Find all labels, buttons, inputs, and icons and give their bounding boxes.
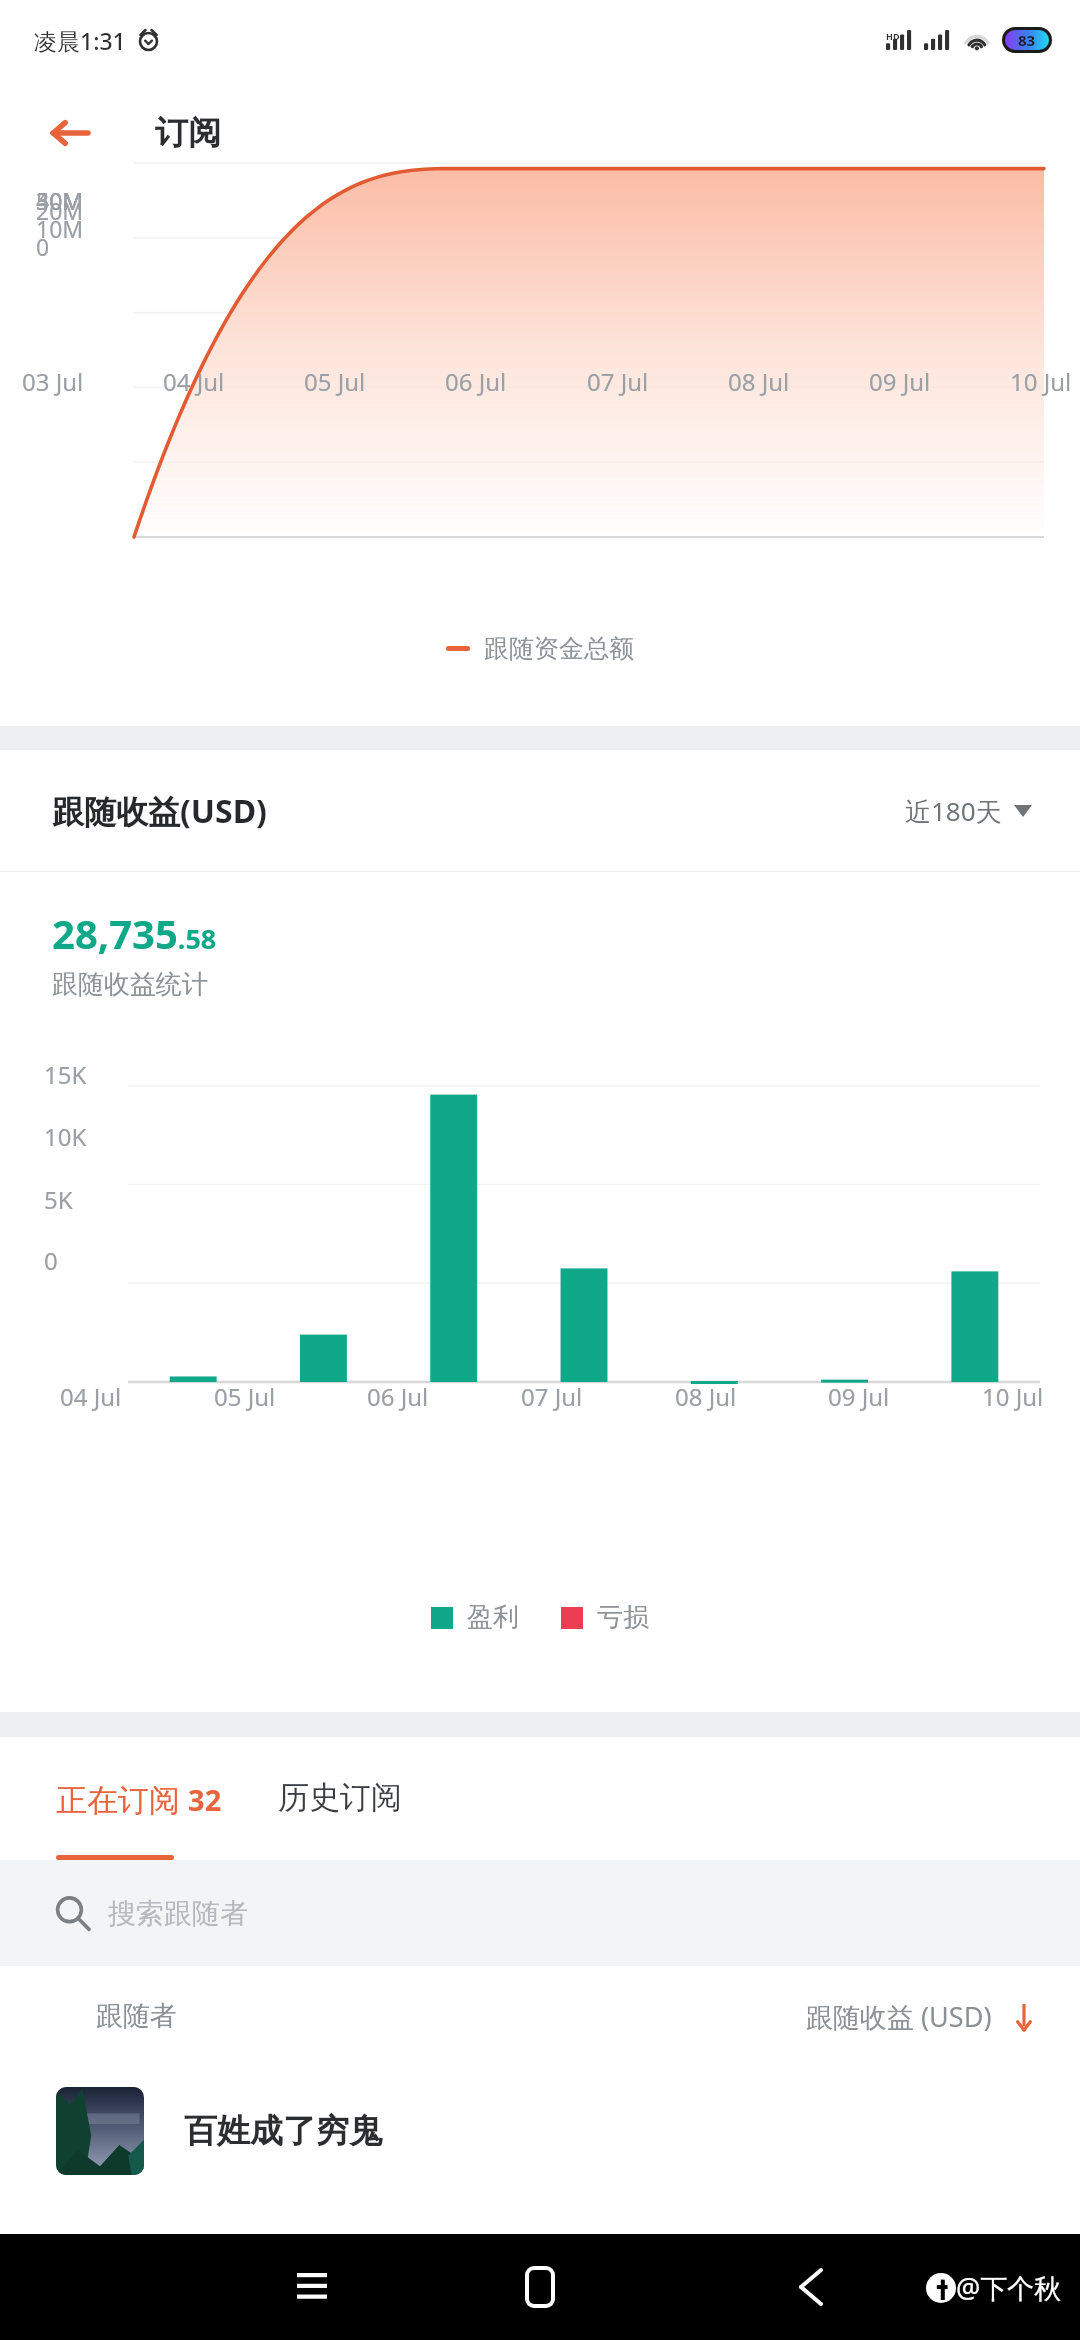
staticText: 跟随收益统计	[52, 968, 208, 1001]
button[interactable]: 跟随收益 (USD)	[806, 1998, 1034, 2035]
staticText: 跟随收益(USD)	[52, 789, 267, 833]
staticText: 09 Jul	[828, 1380, 890, 1413]
button[interactable]: 百姓成了穷鬼	[0, 2066, 1080, 2196]
staticText: 5K	[44, 1183, 73, 1216]
button[interactable]: Recents	[282, 2257, 342, 2317]
staticText: 0	[44, 1244, 58, 1277]
button[interactable]: 搜索跟随者	[54, 1895, 1080, 1931]
staticText: 04 Jul	[163, 365, 225, 398]
staticText: 08 Jul	[675, 1380, 737, 1413]
staticText: 盈利	[467, 1601, 519, 1634]
staticText: 03 Jul	[22, 365, 84, 398]
button[interactable]: Home	[510, 2257, 570, 2317]
staticText: 搜索跟随者	[108, 1896, 248, 1931]
staticText: 10K	[44, 1120, 87, 1153]
staticText: 83	[1018, 30, 1036, 50]
staticText: 近180天	[905, 793, 1002, 829]
staticText: 04 Jul	[60, 1380, 122, 1413]
staticText: @下个秋	[956, 2269, 1062, 2306]
staticText: 07 Jul	[521, 1380, 583, 1413]
staticText: 05 Jul	[304, 365, 366, 398]
staticText: 订阅	[155, 112, 221, 154]
staticText: 百姓成了穷鬼	[184, 2110, 382, 2152]
staticText: 跟随收益 (USD)	[806, 1998, 992, 2035]
staticText: 50M	[36, 185, 84, 216]
staticText: 跟随资金总额	[484, 633, 634, 664]
button[interactable]: Back	[40, 103, 100, 163]
staticText: 跟随者	[96, 1999, 177, 2033]
staticText: 凌晨1:31	[34, 25, 126, 56]
button[interactable]: 历史订阅	[252, 1778, 432, 1817]
staticText: 09 Jul	[869, 365, 931, 398]
staticText: 正在订阅 32	[56, 1778, 222, 1820]
staticText: 亏损	[597, 1601, 649, 1634]
staticText: 06 Jul	[367, 1380, 429, 1413]
button[interactable]: 近180天	[905, 793, 1032, 829]
staticText: 07 Jul	[587, 365, 649, 398]
staticText: 0	[36, 231, 50, 262]
button[interactable]: 正在订阅 32	[0, 1778, 252, 1820]
button[interactable]: Back	[780, 2257, 840, 2317]
staticText: 10 Jul	[1010, 365, 1072, 398]
staticText: 40M	[36, 185, 84, 216]
staticText: 10 Jul	[982, 1380, 1044, 1413]
staticText: 历史订阅	[278, 1778, 402, 1817]
staticText: 10M	[36, 213, 84, 244]
staticText: 05 Jul	[214, 1380, 276, 1413]
staticText: 28,735.58	[52, 906, 217, 960]
staticText: 06 Jul	[445, 365, 507, 398]
staticText: 20M	[36, 195, 84, 226]
staticText: 08 Jul	[728, 365, 790, 398]
other: Sort descending	[1014, 2002, 1034, 2032]
staticText: 15K	[44, 1058, 87, 1091]
staticText: 30M	[36, 185, 84, 216]
staticText: HD	[886, 30, 900, 42]
